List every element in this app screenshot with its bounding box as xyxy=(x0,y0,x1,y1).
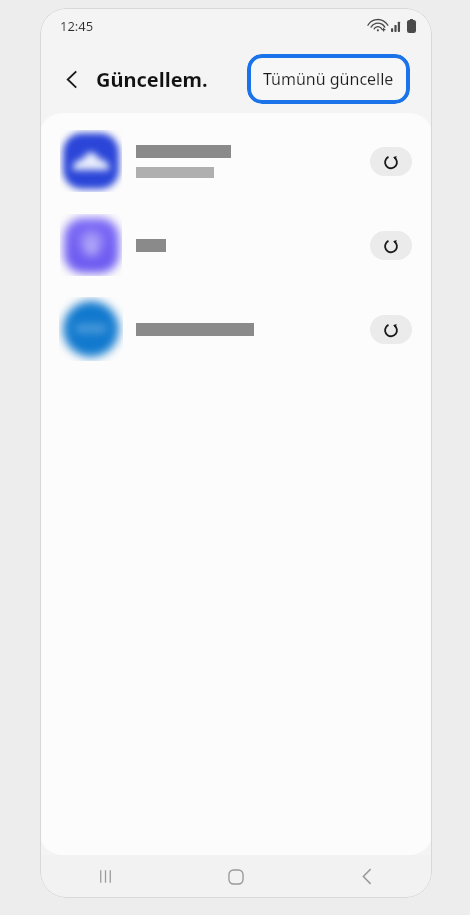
button[interactable]: Home xyxy=(170,855,301,898)
staticText: 12:45 xyxy=(60,17,94,35)
button[interactable]: Update xyxy=(370,231,412,260)
button[interactable]: Tümünü güncelle xyxy=(247,54,410,104)
staticText: Güncellem. xyxy=(96,66,208,93)
button[interactable]: Update xyxy=(40,287,432,371)
staticText: Tümünü güncelle xyxy=(263,68,394,90)
button[interactable]: Update xyxy=(40,203,432,287)
button[interactable]: Back xyxy=(301,855,432,898)
button[interactable]: Update xyxy=(370,147,412,176)
button[interactable]: Update xyxy=(370,315,412,344)
button[interactable]: Back xyxy=(52,59,92,99)
button[interactable]: Update xyxy=(40,119,432,203)
button[interactable]: Recents xyxy=(40,855,170,898)
